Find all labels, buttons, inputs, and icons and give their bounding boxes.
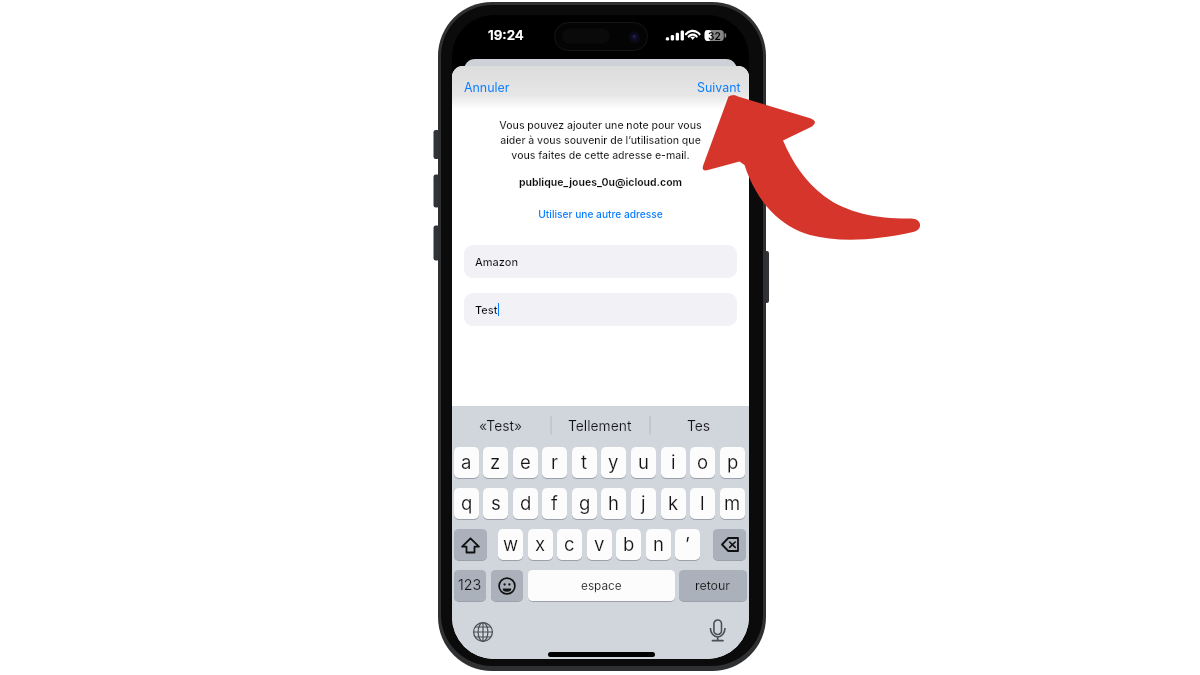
button[interactable]: Tellement: [555, 409, 645, 443]
button[interactable]: d: [513, 488, 538, 519]
staticText: retour: [695, 578, 731, 593]
staticText: 19:24: [488, 27, 524, 43]
staticText: w: [503, 533, 519, 555]
staticText: publique_joues_0u@icloud.com: [452, 176, 749, 189]
button[interactable]: Utiliser une autre adresse: [452, 207, 749, 221]
button[interactable]: Emoji: [491, 570, 523, 601]
staticText: ’: [685, 533, 690, 555]
staticText: d: [520, 492, 532, 514]
button[interactable]: Tes: [654, 409, 744, 443]
staticText: z: [490, 451, 501, 473]
staticText: m: [724, 492, 741, 514]
button[interactable]: j: [631, 488, 656, 519]
staticText: c: [564, 533, 575, 555]
button[interactable]: w: [498, 529, 523, 560]
button[interactable]: f: [542, 488, 567, 519]
button[interactable]: z: [483, 447, 508, 478]
staticText: r: [551, 451, 558, 473]
button[interactable]: Test: [464, 293, 737, 326]
staticText: Utiliser une autre adresse: [452, 208, 749, 220]
staticText: s: [491, 492, 501, 514]
button[interactable]: n: [646, 529, 671, 560]
button[interactable]: v: [587, 529, 612, 560]
staticText: 123: [458, 576, 482, 593]
staticText: e: [520, 451, 531, 473]
button[interactable]: Annuler: [452, 71, 524, 104]
button[interactable]: Suivant: [683, 71, 749, 104]
staticText: o: [697, 451, 709, 473]
button[interactable]: s: [483, 488, 508, 519]
button[interactable]: «Test»: [456, 409, 546, 443]
staticText: Tes: [687, 418, 711, 435]
staticText: 32: [708, 30, 721, 42]
staticText: f: [551, 492, 558, 514]
staticText: Suivant: [697, 80, 741, 95]
staticText: Test: [475, 303, 498, 316]
staticText: a: [461, 451, 472, 473]
staticText: p: [727, 451, 739, 473]
staticText: u: [638, 451, 649, 473]
button[interactable]: c: [557, 529, 582, 560]
button[interactable]: a: [454, 447, 479, 478]
staticText: j: [641, 492, 646, 514]
button[interactable]: p: [720, 447, 745, 478]
button[interactable]: y: [601, 447, 626, 478]
staticText: h: [608, 492, 619, 514]
staticText: i: [671, 451, 676, 473]
staticText: v: [594, 533, 605, 555]
button[interactable]: retour: [679, 570, 747, 601]
button[interactable]: b: [616, 529, 641, 560]
button[interactable]: t: [572, 447, 597, 478]
staticText: l: [700, 492, 705, 514]
button[interactable]: Delete: [713, 529, 746, 560]
button[interactable]: q: [454, 488, 479, 519]
button[interactable]: g: [572, 488, 597, 519]
button[interactable]: espace: [528, 570, 675, 601]
staticText: g: [579, 492, 591, 514]
button[interactable]: h: [601, 488, 626, 519]
staticText: b: [623, 533, 635, 555]
button[interactable]: o: [690, 447, 715, 478]
staticText: Vous pouvez ajouter une note pour vous a…: [495, 119, 706, 161]
staticText: Amazon: [475, 255, 519, 268]
button[interactable]: m: [720, 488, 745, 519]
staticText: y: [608, 451, 619, 473]
staticText: Annuler: [464, 80, 510, 95]
staticText: k: [668, 492, 679, 514]
button[interactable]: l: [690, 488, 715, 519]
button[interactable]: u: [631, 447, 656, 478]
button[interactable]: x: [528, 529, 553, 560]
button[interactable]: Shift: [454, 529, 487, 560]
button[interactable]: Amazon: [464, 245, 737, 278]
button[interactable]: r: [542, 447, 567, 478]
staticText: t: [581, 451, 588, 473]
staticText: espace: [581, 579, 622, 593]
staticText: «Test»: [479, 418, 523, 435]
staticText: n: [653, 533, 664, 555]
button[interactable]: e: [513, 447, 538, 478]
button[interactable]: ’: [675, 529, 700, 560]
button[interactable]: k: [661, 488, 686, 519]
button[interactable]: i: [661, 447, 686, 478]
button[interactable]: 123: [454, 570, 486, 601]
staticText: x: [535, 533, 546, 555]
staticText: q: [461, 492, 473, 514]
staticText: Tellement: [568, 418, 632, 435]
